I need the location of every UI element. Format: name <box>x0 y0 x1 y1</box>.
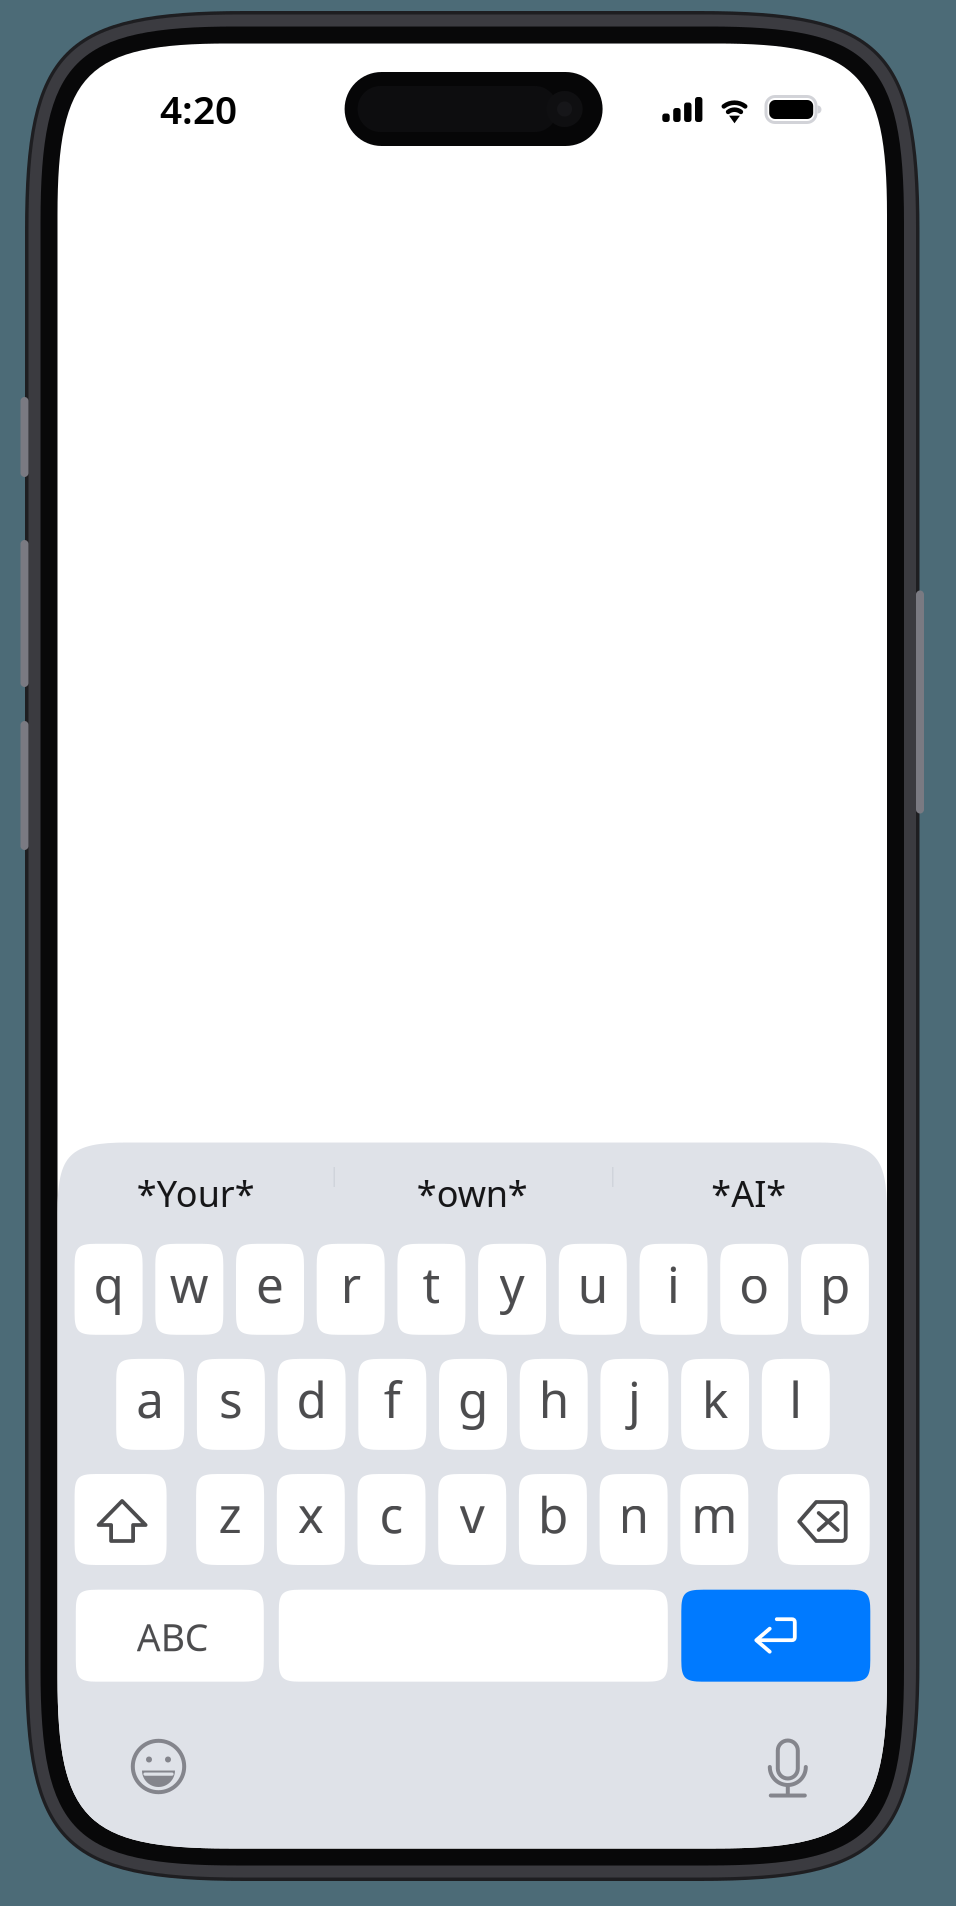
staticText: m <box>691 1481 737 1547</box>
button[interactable]: *AI* <box>610 1160 887 1226</box>
button[interactable]: g <box>439 1359 507 1450</box>
staticText: *own* <box>417 1169 528 1217</box>
staticText: ABC <box>137 1612 209 1661</box>
staticText: x <box>298 1481 324 1547</box>
staticText: q <box>94 1251 124 1316</box>
button[interactable]: Delete <box>778 1474 870 1565</box>
button[interactable]: l <box>762 1359 830 1450</box>
staticText: b <box>538 1481 568 1547</box>
button[interactable]: e <box>236 1244 304 1335</box>
button[interactable]: x <box>277 1474 345 1565</box>
button[interactable]: k <box>681 1359 749 1450</box>
button[interactable]: s <box>197 1359 265 1450</box>
button[interactable]: q <box>75 1244 143 1335</box>
button[interactable]: Dictation <box>767 1738 808 1798</box>
button[interactable]: t <box>397 1244 465 1335</box>
staticText: f <box>384 1366 401 1432</box>
staticText: j <box>628 1366 641 1432</box>
button[interactable]: z <box>196 1474 264 1565</box>
button[interactable]: Emoji keyboard <box>128 1736 188 1796</box>
staticText: n <box>619 1481 649 1547</box>
staticText: y <box>500 1251 525 1316</box>
staticText: g <box>458 1366 488 1432</box>
staticText: t <box>422 1251 440 1316</box>
button[interactable]: m <box>680 1474 748 1565</box>
staticText: e <box>256 1251 284 1316</box>
button[interactable]: i <box>639 1244 707 1335</box>
staticText: u <box>578 1251 608 1316</box>
staticText: *Your* <box>137 1169 255 1217</box>
button[interactable]: u <box>559 1244 627 1335</box>
staticText: h <box>539 1366 569 1432</box>
button[interactable]: n <box>600 1474 668 1565</box>
button[interactable]: return <box>681 1590 870 1682</box>
button[interactable]: o <box>720 1244 788 1335</box>
button[interactable]: ABC <box>76 1590 264 1682</box>
staticText: c <box>379 1481 403 1547</box>
button[interactable]: r <box>317 1244 385 1335</box>
staticText: w <box>170 1251 209 1316</box>
staticText: d <box>297 1366 327 1432</box>
button[interactable]: v <box>438 1474 506 1565</box>
staticText: l <box>789 1366 802 1432</box>
button[interactable]: y <box>478 1244 546 1335</box>
staticText: *AI* <box>711 1169 786 1217</box>
button[interactable]: *own* <box>334 1160 610 1226</box>
staticText: r <box>341 1251 361 1316</box>
button[interactable]: d <box>278 1359 346 1450</box>
staticText: 4:20 <box>160 83 237 135</box>
staticText: v <box>460 1481 485 1547</box>
button[interactable]: w <box>155 1244 223 1335</box>
button[interactable]: a <box>116 1359 184 1450</box>
button[interactable]: c <box>357 1474 425 1565</box>
button[interactable]: *Your* <box>57 1160 334 1226</box>
button[interactable]: b <box>519 1474 587 1565</box>
staticText: a <box>136 1366 164 1432</box>
button[interactable]: f <box>358 1359 426 1450</box>
button[interactable]: j <box>600 1359 668 1450</box>
staticText: i <box>667 1251 680 1316</box>
staticText: s <box>219 1366 243 1432</box>
button[interactable]: Shift <box>75 1474 167 1565</box>
button[interactable]: h <box>520 1359 588 1450</box>
staticText: k <box>702 1366 728 1432</box>
button[interactable]: p <box>801 1244 869 1335</box>
staticText: z <box>219 1481 242 1547</box>
staticText: o <box>739 1251 769 1316</box>
staticText: p <box>820 1251 850 1316</box>
